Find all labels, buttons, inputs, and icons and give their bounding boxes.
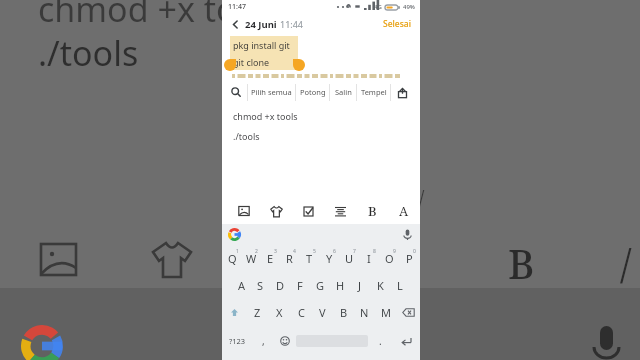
staticText: 3 <box>274 248 277 255</box>
button[interactable]: L <box>390 272 410 299</box>
button[interactable]: M <box>375 299 396 326</box>
button[interactable]: , <box>252 326 274 356</box>
staticText: pkg install git <box>233 39 290 51</box>
button[interactable]: I <box>359 245 379 272</box>
staticText: Q <box>228 251 237 266</box>
staticText: 49% <box>403 3 415 11</box>
button[interactable]: Backspace <box>396 299 420 326</box>
staticText: P <box>406 251 413 266</box>
button[interactable]: Salin <box>330 78 356 106</box>
staticText: 11:47 <box>228 2 246 12</box>
staticText: 0 <box>413 248 416 255</box>
staticText: 7 <box>353 248 356 255</box>
button[interactable]: A <box>232 272 251 299</box>
staticText: 1 <box>236 248 239 255</box>
button[interactable]: O <box>379 245 399 272</box>
staticText: Salin <box>335 87 352 97</box>
staticText: B <box>340 305 348 320</box>
staticText: chmod +x tools <box>233 110 298 122</box>
button[interactable]: T <box>299 245 319 272</box>
button[interactable]: J <box>350 272 370 299</box>
button[interactable]: V <box>312 299 333 326</box>
button[interactable]: S <box>251 272 270 299</box>
button[interactable]: Potong <box>296 78 329 106</box>
staticText: Selesai <box>383 18 412 30</box>
button[interactable]: Bold <box>356 198 388 224</box>
staticText: / <box>620 236 632 290</box>
staticText: B <box>368 202 377 220</box>
staticText: L <box>397 278 403 293</box>
button[interactable]: R <box>280 245 299 272</box>
staticText: ?123 <box>229 336 246 346</box>
button[interactable]: Selesai <box>381 16 414 32</box>
button[interactable]: Voice input <box>401 228 414 241</box>
staticText: , <box>262 334 265 348</box>
staticText: O <box>385 251 394 266</box>
staticText: Y <box>326 251 333 266</box>
staticText: J <box>358 278 362 293</box>
staticText: M <box>381 305 391 320</box>
button[interactable]: Tempel <box>357 78 390 106</box>
staticText: X <box>276 305 283 320</box>
button[interactable]: H <box>330 272 350 299</box>
button[interactable]: X <box>268 299 290 326</box>
button[interactable]: Y <box>319 245 339 272</box>
button[interactable]: Align <box>324 198 356 224</box>
button[interactable]: U <box>339 245 359 272</box>
button[interactable]: Search <box>225 78 247 106</box>
staticText: U <box>345 251 354 266</box>
staticText: G <box>316 278 325 293</box>
staticText: B <box>508 236 535 290</box>
staticText: H <box>336 278 345 293</box>
staticText: N <box>360 305 369 320</box>
staticText: / <box>418 183 425 213</box>
button[interactable]: D <box>270 272 290 299</box>
staticText: S <box>257 278 264 293</box>
button[interactable]: Pilih semua <box>248 78 295 106</box>
staticText: C <box>298 305 305 320</box>
button[interactable]: W <box>242 245 261 272</box>
button[interactable]: Style <box>260 198 292 224</box>
button[interactable]: Q <box>223 245 242 272</box>
staticText: E <box>267 251 274 266</box>
button[interactable]: Back <box>228 17 242 31</box>
staticText: K <box>377 278 384 293</box>
staticText: 24 Juni <box>245 18 277 31</box>
button[interactable]: K <box>370 272 390 299</box>
button[interactable]: G <box>310 272 330 299</box>
button[interactable]: B <box>333 299 354 326</box>
staticText: 5 <box>313 248 316 255</box>
staticText: ./tools <box>233 130 260 142</box>
button[interactable]: F <box>290 272 310 299</box>
staticText: ./tools <box>38 30 139 76</box>
button[interactable]: ?123 <box>222 326 252 356</box>
staticText: F <box>297 278 303 293</box>
staticText: W <box>246 251 257 266</box>
button[interactable]: Share <box>391 78 413 106</box>
button[interactable]: E <box>261 245 280 272</box>
button[interactable]: Enter <box>392 326 420 356</box>
button[interactable]: Z <box>246 299 268 326</box>
button[interactable]: Emoji <box>274 326 296 356</box>
staticText: I <box>367 251 371 266</box>
button[interactable]: Checklist <box>292 198 324 224</box>
staticText: Potong <box>300 87 326 97</box>
button[interactable]: . <box>368 326 392 356</box>
staticText: chmod +x to <box>38 0 237 32</box>
button[interactable]: Shift <box>222 299 246 326</box>
staticText: V <box>319 305 326 320</box>
staticText: R <box>286 251 293 266</box>
staticText: 11:44 <box>280 18 304 30</box>
button[interactable]: C <box>290 299 312 326</box>
button[interactable]: Insert image <box>228 198 260 224</box>
button[interactable]: N <box>354 299 375 326</box>
button[interactable]: P <box>399 245 419 272</box>
staticText: . <box>379 334 382 348</box>
staticText: D <box>276 278 285 293</box>
staticText: A <box>238 278 246 293</box>
button[interactable]: Italic <box>388 198 420 224</box>
staticText: Tempel <box>361 87 387 97</box>
staticText: 2 <box>255 248 258 255</box>
staticText: 4G <box>374 3 382 11</box>
